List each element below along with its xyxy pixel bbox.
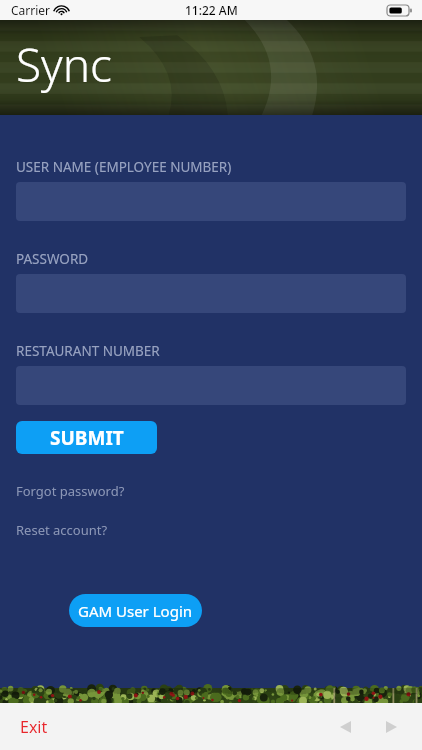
staticText: RESTAURANT NUMBER xyxy=(16,342,160,360)
staticText: USER NAME (EMPLOYEE NUMBER) xyxy=(16,158,232,176)
staticText: Carrier xyxy=(11,2,51,18)
button[interactable]: SUBMIT xyxy=(16,421,157,454)
button[interactable]: GAM User Login xyxy=(69,594,202,627)
staticText: Reset account? xyxy=(16,521,108,539)
button[interactable]: Back xyxy=(328,710,362,744)
staticText: Exit xyxy=(20,716,48,738)
button[interactable]: Forgot password? xyxy=(16,482,125,500)
button[interactable]: Exit xyxy=(20,716,48,738)
button[interactable]: Forward xyxy=(374,710,408,744)
staticText: SUBMIT xyxy=(50,425,124,451)
button[interactable]: Reset account? xyxy=(16,521,108,539)
staticText: 11:22 AM xyxy=(185,2,238,18)
staticText: Sync xyxy=(16,33,112,96)
staticText: GAM User Login xyxy=(78,601,193,621)
staticText: Forgot password? xyxy=(16,482,125,500)
staticText: PASSWORD xyxy=(16,250,89,268)
